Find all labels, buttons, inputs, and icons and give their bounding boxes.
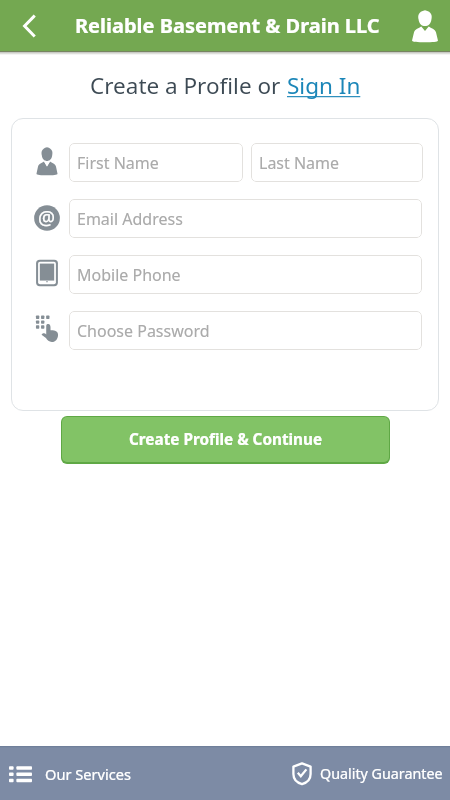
button[interactable]: Sign In <box>287 70 361 101</box>
staticText: Last Name <box>259 152 340 174</box>
button[interactable]: Email Address <box>69 199 422 238</box>
button[interactable]: Quality Guarantee <box>292 762 450 785</box>
staticText: Sign In <box>287 70 361 101</box>
staticText: Email Address <box>77 208 183 230</box>
button[interactable]: First Name <box>69 143 243 182</box>
staticText: Reliable Basement & Drain LLC <box>75 12 380 39</box>
button[interactable]: Back <box>6 3 52 49</box>
staticText: Mobile Phone <box>77 264 181 286</box>
button[interactable]: Create Profile & Continue <box>62 417 389 462</box>
button[interactable]: Our Services <box>0 764 292 784</box>
staticText: Our Services <box>45 764 131 784</box>
button[interactable]: Mobile Phone <box>69 255 422 294</box>
staticText: Quality Guarantee <box>320 764 443 783</box>
button[interactable]: Choose Password <box>69 311 422 350</box>
staticText: Choose Password <box>77 320 210 342</box>
staticText: Create Profile & Continue <box>129 429 323 450</box>
staticText: First Name <box>77 152 159 174</box>
staticText: @ <box>38 205 56 231</box>
staticText: Create a Profile or <box>90 70 287 101</box>
button[interactable]: Account <box>404 5 446 47</box>
button[interactable]: Last Name <box>251 143 423 182</box>
